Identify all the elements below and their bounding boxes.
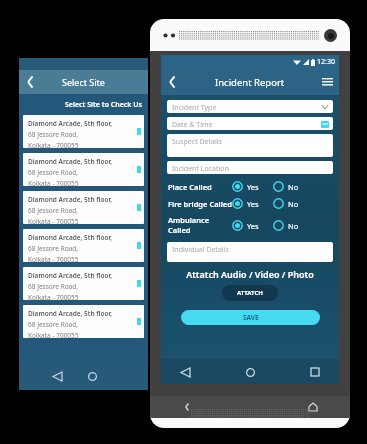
button[interactable]: Back <box>49 368 65 384</box>
button[interactable]: Home <box>242 364 258 380</box>
staticText: Diamond Arcade, 5th floor, <box>28 119 113 128</box>
staticText: Kolkata - 700055 <box>28 179 79 186</box>
button[interactable]: Back <box>161 69 339 95</box>
button[interactable]: Diamond Arcade, 5th floor, <box>23 115 144 148</box>
staticText: Individual Details <box>172 245 229 255</box>
staticText: Diamond Arcade, 5th floor, <box>28 233 113 242</box>
staticText: 68 Jessore Road, <box>28 282 78 291</box>
button[interactable]: Diamond Arcade, 5th floor, <box>23 305 144 338</box>
staticText: Kolkata - 700055 <box>28 293 79 300</box>
staticText: Place Called <box>168 182 232 192</box>
staticText: 68 Jessore Road, <box>28 168 78 177</box>
button[interactable]: Diamond Arcade, 5th floor, <box>23 191 144 224</box>
button[interactable]: SAVE <box>181 310 320 325</box>
button[interactable]: ATTATCH <box>222 285 278 301</box>
button[interactable]: Yes <box>232 198 259 209</box>
staticText: Yes <box>247 199 259 209</box>
staticText: 68 Jessore Road, <box>28 244 78 253</box>
button[interactable]: Yes <box>232 220 259 231</box>
button[interactable]: No <box>273 181 299 192</box>
staticText: Incident Location <box>172 164 229 174</box>
staticText: Ambulance Called <box>168 215 232 235</box>
button[interactable]: Home <box>306 400 320 414</box>
button[interactable]: No <box>273 220 299 231</box>
staticText: Diamond Arcade, 5th floor, <box>28 271 113 280</box>
button[interactable]: Menu <box>319 74 335 90</box>
staticText: Kolkata - 700055 <box>28 217 79 224</box>
button[interactable]: Yes <box>232 181 259 192</box>
staticText: No <box>288 182 299 192</box>
button[interactable]: Incident Location <box>167 161 333 174</box>
staticText: No <box>288 221 299 231</box>
staticText: Kolkata - 700055 <box>28 141 79 148</box>
staticText: Incident Report <box>215 76 285 89</box>
staticText: Date & Time <box>172 120 213 130</box>
button[interactable]: Individual Details <box>167 242 333 262</box>
button[interactable]: Back <box>177 364 193 380</box>
button[interactable]: Diamond Arcade, 5th floor, <box>23 229 144 262</box>
staticText: 68 Jessore Road, <box>28 320 78 329</box>
button[interactable]: Home <box>84 368 100 384</box>
staticText: No <box>288 199 299 209</box>
button[interactable]: Date & Time <box>167 117 333 130</box>
button[interactable]: No <box>273 198 299 209</box>
staticText: Diamond Arcade, 5th floor, <box>28 309 113 318</box>
staticText: Yes <box>247 182 259 192</box>
button[interactable]: Pick date <box>320 119 329 128</box>
staticText: Suspect Details <box>172 137 222 147</box>
button[interactable]: Diamond Arcade, 5th floor, <box>23 267 144 300</box>
button[interactable]: Back <box>19 70 148 94</box>
staticText: Diamond Arcade, 5th floor, <box>28 195 113 204</box>
button[interactable]: Incident Type <box>167 100 333 113</box>
button[interactable]: Back <box>180 400 194 414</box>
button[interactable]: Recents <box>307 364 323 380</box>
staticText: Select Site <box>62 76 105 88</box>
button[interactable]: Diamond Arcade, 5th floor, <box>23 153 144 186</box>
staticText: 68 Jessore Road, <box>28 206 78 215</box>
staticText: 68 Jessore Road, <box>28 130 78 139</box>
staticText: SAVE <box>243 313 259 322</box>
staticText: Kolkata - 700055 <box>28 331 79 338</box>
staticText: Diamond Arcade, 5th floor, <box>28 157 113 166</box>
button[interactable]: Back <box>164 73 182 91</box>
button[interactable]: Back <box>22 73 40 91</box>
staticText: Attatch Audio / Video / Photo <box>161 268 339 280</box>
staticText: Incident Type <box>172 103 217 113</box>
staticText: Select Site to Check Us <box>65 100 142 110</box>
staticText: 12:30 <box>317 57 335 67</box>
staticText: Yes <box>247 221 259 231</box>
staticText: Fire bridge Called <box>168 199 232 209</box>
staticText: ATTATCH <box>237 289 263 297</box>
button[interactable]: Suspect Details <box>167 134 333 157</box>
staticText: Kolkata - 700055 <box>28 255 79 262</box>
